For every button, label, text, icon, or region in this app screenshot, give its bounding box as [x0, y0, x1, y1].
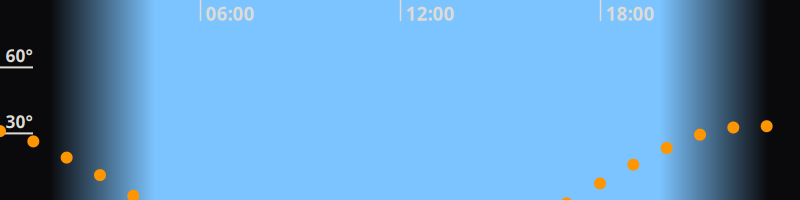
staticText: 12:00	[406, 1, 455, 26]
staticText: 30°	[5, 110, 32, 133]
staticText: 06:00	[206, 1, 255, 26]
staticText: 18:00	[606, 1, 655, 26]
staticText: 60°	[5, 44, 32, 67]
